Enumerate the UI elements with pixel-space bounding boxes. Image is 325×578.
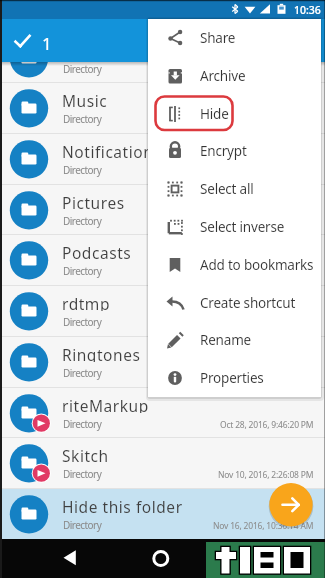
staticText: Directory [63,214,102,228]
staticText: Notifications [62,141,162,159]
button[interactable]: Pictures [0,185,325,236]
staticText: Share [200,29,236,47]
button[interactable]: riteMarkup [0,388,325,439]
staticText: Podcasts [62,242,132,260]
staticText: Directory [63,264,102,278]
staticText: Create shortcut [200,294,296,312]
staticText: Pictures [62,192,125,210]
button[interactable]: Properties [148,359,321,397]
button[interactable]: Notifications [0,134,325,185]
button[interactable]: Music [0,83,325,134]
staticText: Directory [63,518,102,532]
button[interactable]: Movies [0,33,325,84]
button[interactable]: Add to bookmarks [148,246,321,284]
staticText: Hide this folder [62,496,183,514]
staticText: Directory [63,163,102,177]
staticText: 1 [42,32,52,51]
staticText: Directory [63,315,102,329]
staticText: Nov 16, 2016, 10:36:14 AM [213,520,314,532]
button[interactable]: Rename [148,321,321,359]
button[interactable]: 1 [0,19,325,62]
button[interactable]: Podcasts [0,235,325,286]
staticText: Skitch [62,445,109,463]
staticText: Directory [63,366,102,380]
button[interactable]: Skitch [0,438,325,489]
staticText: Encrypt [200,142,247,160]
button[interactable] [141,539,181,578]
button[interactable] [268,482,314,530]
staticText: 10:36 [294,3,321,16]
staticText: Add to bookmarks [200,256,314,274]
staticText: Nov 10, 2016, 2:26:08 PM [218,469,314,481]
staticText: Select all [200,180,254,198]
staticText: Archive [200,67,246,85]
staticText: Hide [200,105,229,123]
button[interactable]: Select all [148,170,321,208]
button[interactable]: Ringtones [0,337,325,388]
button[interactable]: Hide this folder [0,489,325,540]
staticText: rdtmp [62,293,110,311]
button[interactable]: Create shortcut [148,284,321,322]
staticText: Properties [200,369,264,387]
button[interactable]: Select inverse [148,208,321,246]
staticText: Rename [200,331,251,349]
staticText: Directory [63,112,102,126]
button[interactable]: Archive [148,57,321,95]
staticText: riteMarkup [62,395,149,413]
staticText: Directory [63,62,102,76]
staticText: Select inverse [200,218,285,236]
button[interactable]: Share [148,19,321,57]
staticText: Directory [63,467,102,481]
button[interactable]: Encrypt [148,132,321,170]
staticText: Directory [63,417,102,431]
staticText: Oct 28, 2016, 9:46:20 PM [220,419,314,431]
staticText: Ringtones [62,344,141,362]
button[interactable]: Hide [148,95,321,133]
staticText: Music [62,90,108,108]
button[interactable] [50,539,90,578]
button[interactable]: rdtmp [0,286,325,337]
